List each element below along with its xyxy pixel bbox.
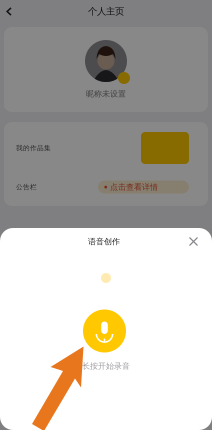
staticText: 长按开始录音 (82, 361, 130, 371)
button[interactable]: 长按开始录音 (83, 309, 126, 352)
button[interactable]: 返回 (0, 2, 18, 20)
staticText: 个人主页 (88, 6, 124, 17)
staticText: 昵称未设置 (86, 89, 126, 99)
staticText: 公告栏 (16, 183, 37, 191)
staticText: 语音创作 (88, 237, 120, 246)
staticText: • (104, 181, 108, 193)
staticText: 我的作品集 (16, 144, 51, 152)
staticText: 点击查看详情 (110, 182, 158, 192)
button[interactable]: 关闭 (182, 230, 204, 252)
